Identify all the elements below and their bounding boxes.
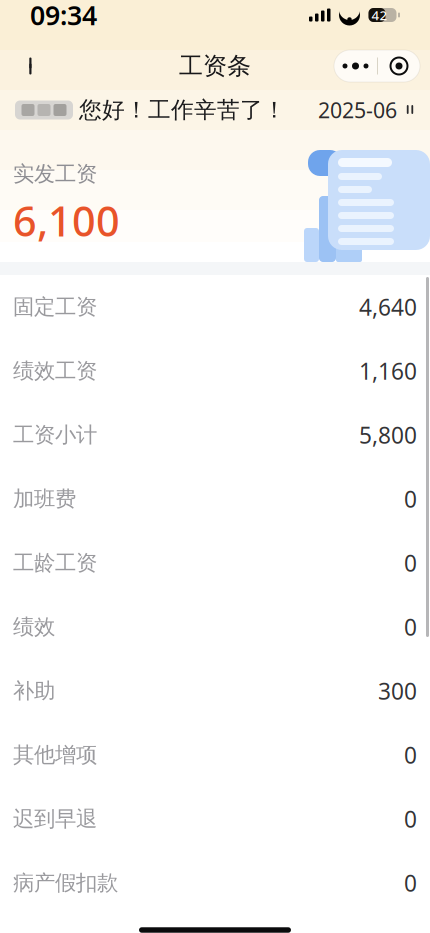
staticText: 42 bbox=[371, 6, 387, 24]
staticText: 4,640 bbox=[359, 292, 417, 322]
staticText: 0 bbox=[404, 548, 417, 578]
staticText: 09:34 bbox=[30, 0, 97, 33]
button[interactable]: 其他增项 bbox=[0, 723, 430, 787]
staticText: 补助 bbox=[13, 678, 55, 704]
button[interactable]: 工资小计 bbox=[0, 403, 430, 467]
staticText: 实发工资 bbox=[13, 161, 97, 187]
staticText: 迟到早退 bbox=[13, 806, 97, 832]
staticText: 5,800 bbox=[359, 420, 417, 450]
staticText: 6,100 bbox=[13, 193, 120, 248]
button[interactable]: 绩效工资 bbox=[0, 339, 430, 403]
staticText: 固定工资 bbox=[13, 294, 97, 320]
staticText: 0 bbox=[404, 484, 417, 514]
staticText: 病产假扣款 bbox=[13, 870, 118, 896]
staticText: 加班费 bbox=[13, 486, 76, 512]
button[interactable]: 补助 bbox=[0, 659, 430, 723]
staticText: 工资小计 bbox=[13, 422, 97, 448]
staticText: 0 bbox=[404, 868, 417, 898]
staticText: 300 bbox=[378, 676, 417, 706]
button[interactable]: 病产假扣款 bbox=[0, 851, 430, 915]
button[interactable]: 关闭 bbox=[378, 50, 420, 82]
button[interactable]: 返回 bbox=[10, 44, 54, 88]
button[interactable]: 2025-06 bbox=[318, 96, 417, 124]
staticText: 绩效工资 bbox=[13, 358, 97, 384]
staticText: 其他增项 bbox=[13, 742, 97, 768]
staticText: 1,160 bbox=[359, 356, 417, 386]
staticText: 工资条 bbox=[179, 51, 251, 81]
staticText: 2025-06 bbox=[318, 96, 397, 124]
staticText: 绩效 bbox=[13, 614, 55, 640]
staticText: 您好！工作辛苦了！ bbox=[79, 96, 286, 124]
staticText: 工龄工资 bbox=[13, 550, 97, 576]
staticText: 0 bbox=[404, 740, 417, 770]
staticText: 0 bbox=[404, 804, 417, 834]
button[interactable]: 迟到早退 bbox=[0, 787, 430, 851]
button[interactable]: 更多 bbox=[334, 50, 377, 82]
button[interactable]: 固定工资 bbox=[0, 275, 430, 339]
button[interactable]: 加班费 bbox=[0, 467, 430, 531]
staticText: 0 bbox=[404, 612, 417, 642]
button[interactable]: 绩效 bbox=[0, 595, 430, 659]
button[interactable]: 工龄工资 bbox=[0, 531, 430, 595]
